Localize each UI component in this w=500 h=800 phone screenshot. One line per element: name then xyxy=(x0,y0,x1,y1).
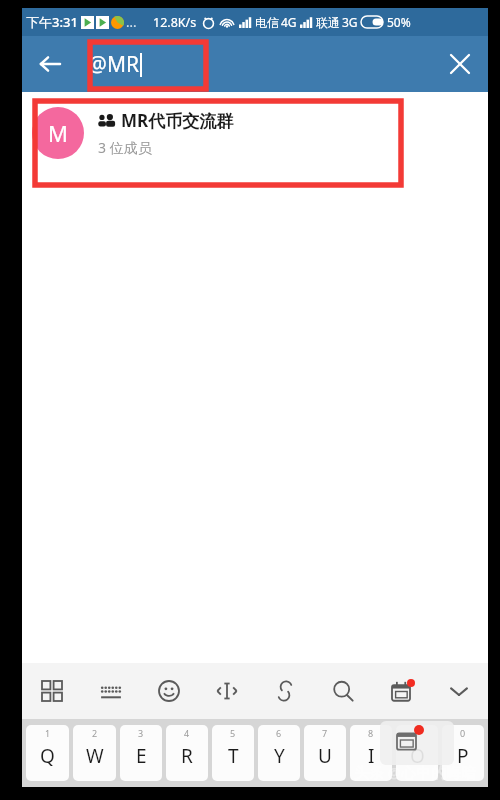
staticText: 2 xyxy=(92,727,98,739)
staticText: 5 xyxy=(230,727,236,739)
staticText: 4G xyxy=(281,14,297,30)
staticText: 6 xyxy=(276,727,282,739)
button[interactable]: 1 xyxy=(26,725,69,781)
staticText: 3 位成员 xyxy=(98,138,152,157)
staticText: 8 xyxy=(368,727,374,739)
button[interactable]: Keyboard xyxy=(81,663,140,719)
staticText: E xyxy=(136,743,147,769)
staticText: W xyxy=(86,743,104,769)
button[interactable]: Apps xyxy=(22,663,81,719)
staticText: I xyxy=(368,743,375,769)
staticText: MR代币交流群 xyxy=(121,109,234,132)
staticText: 4 xyxy=(184,727,190,739)
button[interactable]: Search xyxy=(314,663,372,719)
staticText: @MR xyxy=(88,50,139,79)
button[interactable]: 0 xyxy=(442,725,484,781)
button[interactable]: Calendar xyxy=(372,663,430,719)
staticText: 9 xyxy=(414,727,420,739)
staticText: M xyxy=(48,118,68,148)
staticText: T xyxy=(228,743,239,769)
staticText: 电信 xyxy=(255,15,279,30)
button[interactable]: 9 xyxy=(396,725,438,781)
button[interactable]: Select text xyxy=(198,663,256,719)
staticText: 联通 xyxy=(316,15,340,30)
button[interactable]: 7 xyxy=(304,725,346,781)
button[interactable]: M xyxy=(22,92,488,174)
staticText: 50% xyxy=(387,14,411,30)
button[interactable]: Back xyxy=(22,36,78,92)
button[interactable]: 3 xyxy=(120,725,162,781)
button[interactable]: Close xyxy=(432,36,488,92)
button[interactable]: 2 xyxy=(73,725,116,781)
staticText: O xyxy=(410,743,425,769)
staticText: 1 xyxy=(45,727,51,739)
staticText: P xyxy=(457,743,469,769)
staticText: 下午3:31 xyxy=(26,13,78,31)
staticText: 7 xyxy=(322,727,328,739)
staticText: 3 xyxy=(138,727,144,739)
staticText: 0 xyxy=(460,727,466,739)
staticText: 头条 @心中的晦暗 xyxy=(353,762,476,782)
button[interactable]: Emoji xyxy=(140,663,198,719)
staticText: Y xyxy=(274,743,285,769)
button[interactable]: Collapse xyxy=(430,663,488,719)
staticText: 3G xyxy=(342,14,358,30)
button[interactable]: 5 xyxy=(212,725,254,781)
staticText: ... xyxy=(126,13,137,31)
button[interactable]: 4 xyxy=(166,725,208,781)
button[interactable]: 8 xyxy=(350,725,392,781)
staticText: Q xyxy=(40,743,55,769)
staticText: R xyxy=(181,743,193,769)
staticText: U xyxy=(318,743,332,769)
button[interactable]: Clipboard xyxy=(256,663,314,719)
button[interactable]: 6 xyxy=(258,725,300,781)
button[interactable]: @MR xyxy=(78,36,432,92)
staticText: 12.8K/s xyxy=(153,14,197,31)
